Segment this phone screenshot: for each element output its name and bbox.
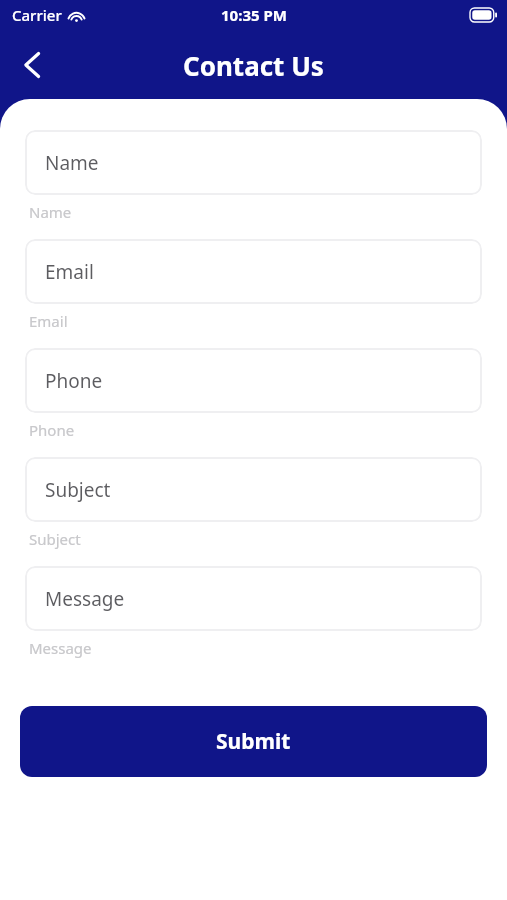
button[interactable]: Message — [25, 566, 482, 631]
button[interactable]: Phone — [25, 348, 482, 413]
staticText: Contact Us — [183, 48, 324, 83]
staticText: Subject — [45, 477, 111, 503]
staticText: Message — [29, 638, 92, 658]
staticText: Email — [45, 259, 94, 285]
staticText: Phone — [29, 420, 75, 440]
staticText: Subject — [29, 529, 81, 549]
staticText: Name — [29, 202, 72, 222]
button[interactable]: Subject — [25, 457, 482, 522]
staticText: Email — [29, 311, 68, 331]
staticText: Carrier — [12, 5, 62, 25]
button[interactable]: Name — [25, 130, 482, 195]
button[interactable]: Submit — [20, 706, 487, 777]
staticText: Name — [45, 150, 99, 176]
staticText: 10:35 PM — [221, 5, 287, 25]
button[interactable]: Email — [25, 239, 482, 304]
staticText: Phone — [45, 368, 103, 394]
button[interactable]: Back — [10, 43, 54, 87]
staticText: Message — [45, 586, 125, 612]
staticText: Submit — [216, 727, 291, 756]
